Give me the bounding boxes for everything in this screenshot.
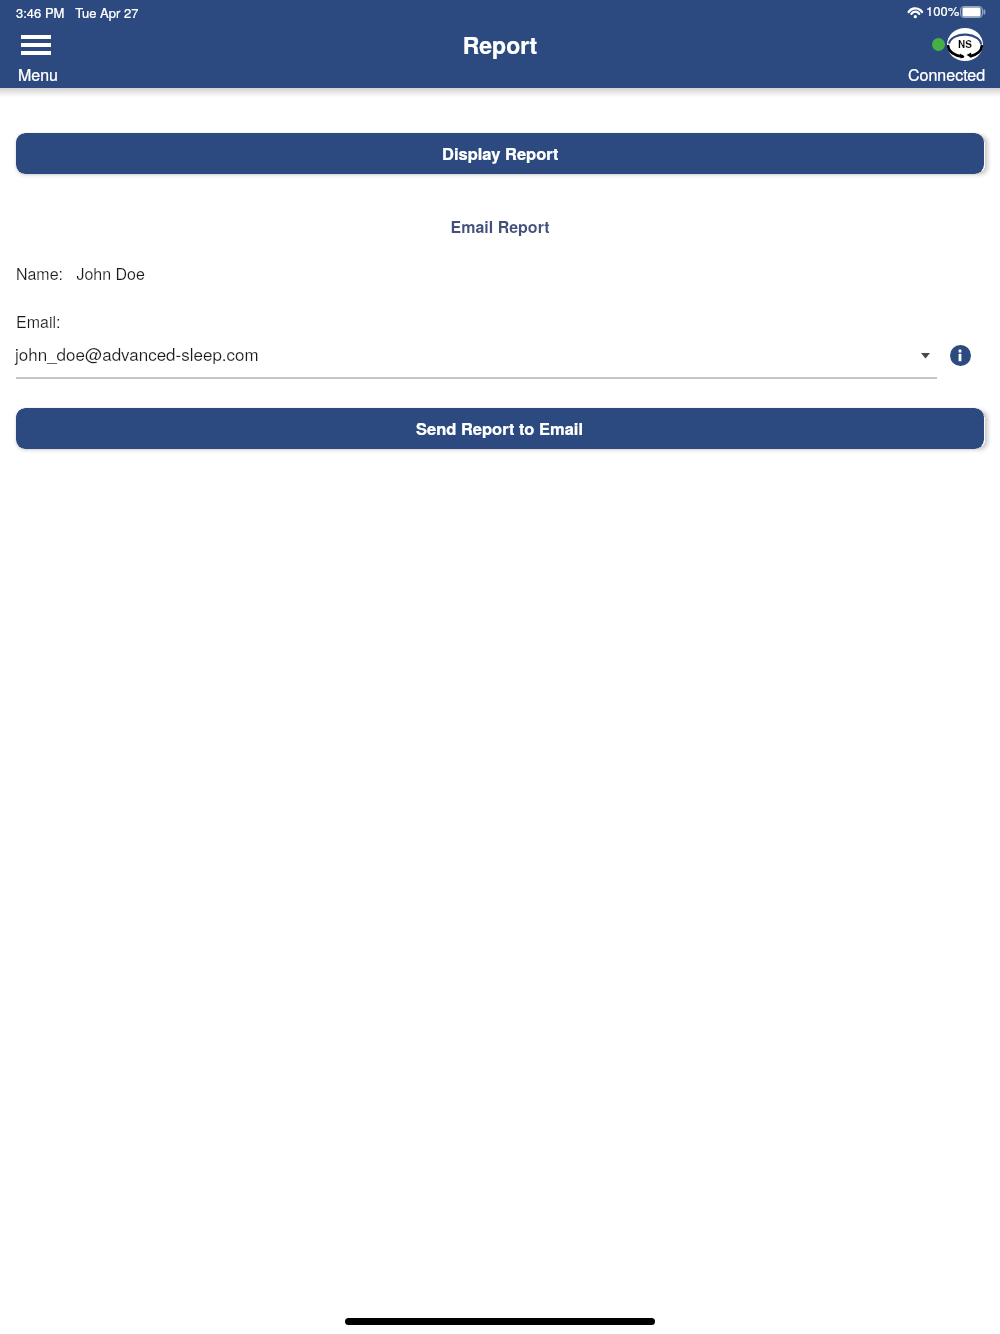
button[interactable]: john_doe@advanced-sleep.com [16,336,937,379]
staticText: 3:46 PM Tue Apr 27 [16,3,139,22]
button[interactable]: Display Report [16,133,984,174]
button[interactable]: Device connected [905,28,995,86]
button[interactable]: Send Report to Email [16,408,984,449]
button[interactable]: Open navigation menu [10,28,68,86]
staticText: Send Report to Email [416,416,584,440]
staticText: Display Report [442,141,559,165]
staticText: Connected [908,63,986,86]
staticText: Name: John Doe [16,262,145,285]
staticText: Report [0,28,1000,61]
staticText: Menu [18,63,59,86]
staticText: 100% [926,1,960,20]
staticText: NS [958,37,972,51]
staticText: Email Report [0,215,1000,238]
staticText: Email: [16,310,61,333]
staticText: john_doe@advanced-sleep.com [15,341,259,365]
button[interactable]: Information about email report [950,345,971,366]
